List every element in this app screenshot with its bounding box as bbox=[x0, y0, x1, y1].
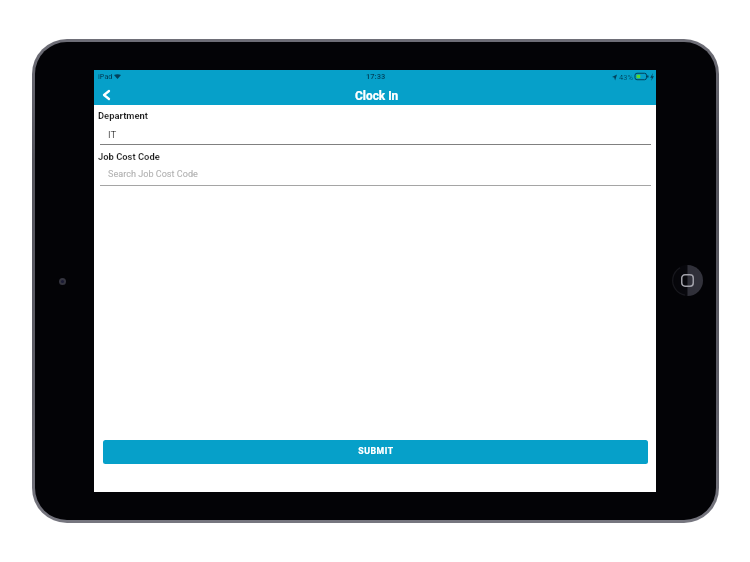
staticText: 43% bbox=[619, 73, 633, 82]
staticText: IT bbox=[108, 129, 117, 140]
staticText: iPad bbox=[98, 72, 113, 80]
staticText: Search Job Cost Code bbox=[108, 169, 198, 180]
button[interactable]: IT bbox=[100, 126, 651, 145]
staticText: Department bbox=[98, 110, 148, 121]
staticText: Clock In bbox=[355, 89, 399, 103]
button[interactable]: SUBMIT bbox=[103, 440, 648, 464]
button[interactable]: Search Job Cost Code bbox=[100, 166, 651, 186]
button[interactable]: Back bbox=[94, 83, 116, 105]
staticText: SUBMIT bbox=[358, 446, 394, 456]
staticText: Job Cost Code bbox=[98, 151, 160, 162]
staticText: 17:33 bbox=[366, 72, 386, 81]
